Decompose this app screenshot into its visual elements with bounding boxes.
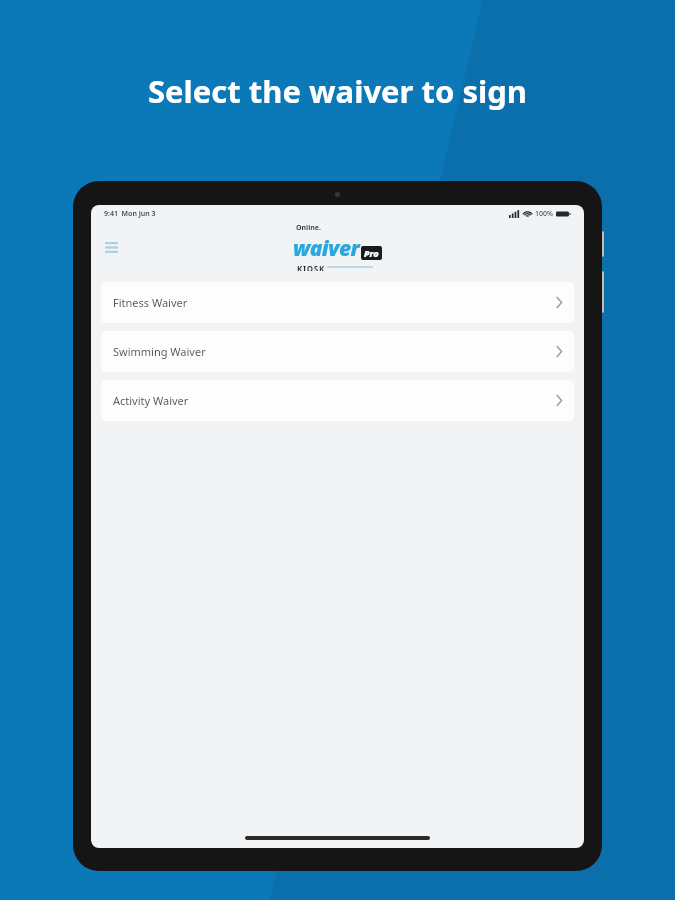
staticText: Swimming Waiver [113, 344, 206, 359]
button[interactable]: Swimming Waiver [101, 331, 574, 372]
staticText: Select the waiver to sign [148, 70, 527, 112]
button[interactable]: Menu [98, 234, 124, 260]
staticText: Activity Waiver [113, 393, 189, 408]
staticText: Pro [364, 247, 379, 259]
staticText: Fitness Waiver [113, 295, 188, 310]
staticText: waiver [293, 234, 360, 263]
button[interactable]: Activity Waiver [101, 380, 574, 421]
staticText: KIOSK [297, 263, 325, 271]
staticText: 100% [535, 209, 553, 219]
staticText: 9:41 Mon Jun 3 [104, 209, 156, 219]
staticText: Online. [296, 223, 321, 233]
button[interactable]: Fitness Waiver [101, 282, 574, 323]
